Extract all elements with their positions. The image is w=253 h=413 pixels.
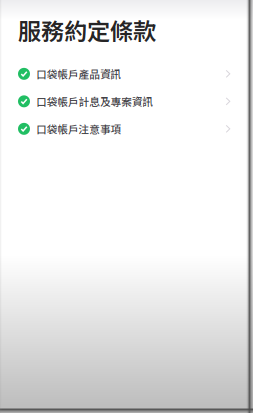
staticText: 服務約定條款 [18,13,156,47]
staticText: 口袋帳戶計息及專案資訊 [36,94,153,109]
staticText: 口袋帳戶產品資訊 [36,66,122,81]
button[interactable]: 口袋帳戶產品資訊 [0,60,253,88]
button[interactable]: 口袋帳戶計息及專案資訊 [0,88,253,115]
button[interactable]: 口袋帳戶注意事項 [0,115,253,143]
staticText: 口袋帳戶注意事項 [36,121,122,136]
